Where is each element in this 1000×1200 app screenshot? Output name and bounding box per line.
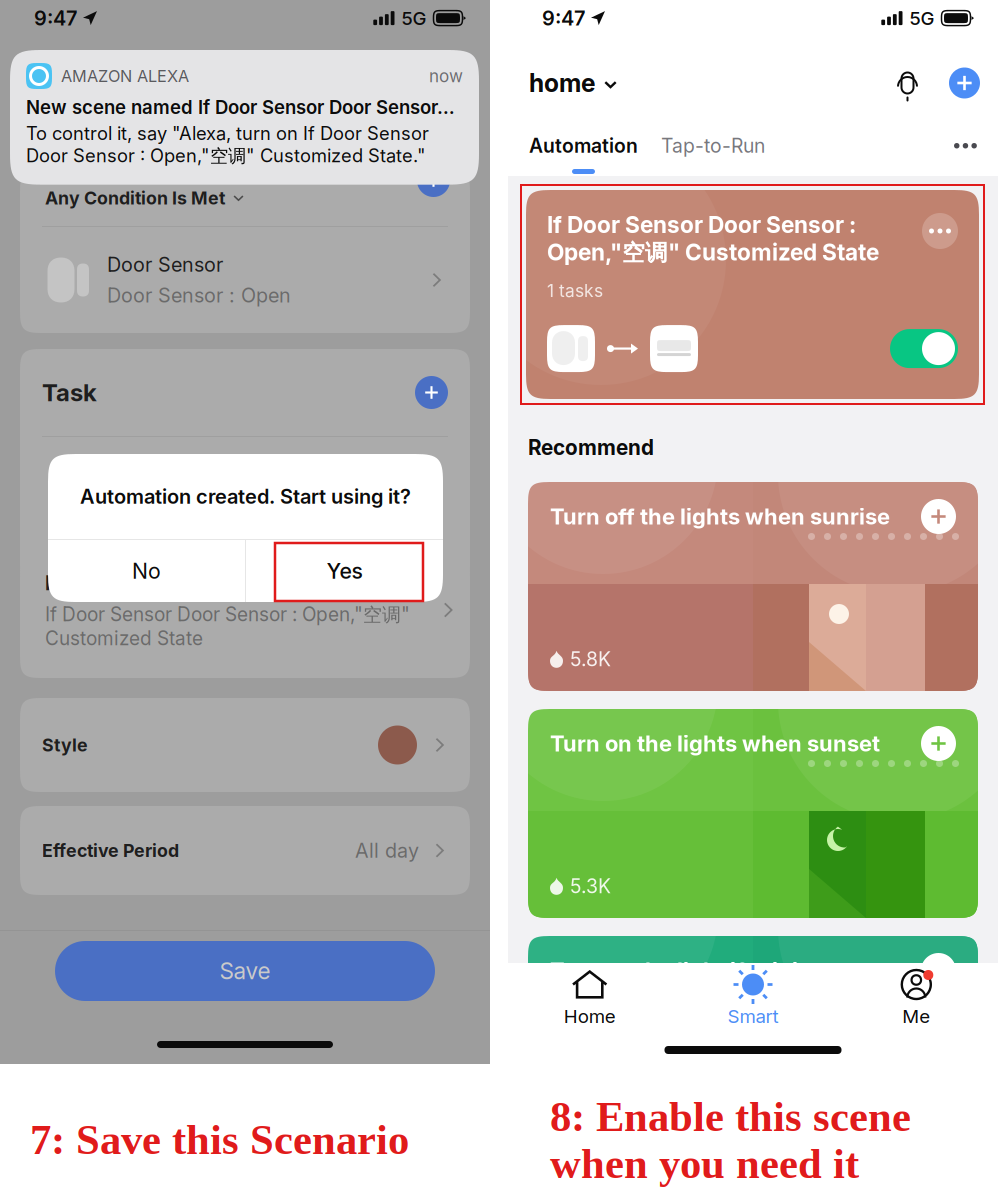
- staticText: Name: [45, 572, 98, 595]
- button[interactable]: Tap-to-Run: [659, 129, 767, 162]
- staticText: when you need it: [550, 1140, 859, 1187]
- staticText: No: [132, 558, 161, 584]
- staticText: 1 tasks: [547, 280, 603, 301]
- staticText: 5G: [909, 7, 934, 29]
- staticText: 9:47: [542, 6, 585, 30]
- button[interactable]: Smart: [671, 970, 835, 1028]
- staticText: home: [529, 68, 595, 98]
- staticText: now: [429, 66, 463, 86]
- staticText: Yes: [326, 558, 362, 584]
- staticText: Home: [564, 1005, 616, 1028]
- staticText: Door Sensor : Open: [107, 283, 291, 307]
- staticText: Any Condition Is Met: [45, 187, 225, 209]
- staticText: If Door Sensor Door Sensor : Open,"空调" C…: [547, 211, 879, 267]
- button[interactable]: Me: [835, 970, 998, 1028]
- button[interactable]: Automation: [527, 129, 640, 162]
- button[interactable]: Yes: [246, 540, 443, 602]
- button[interactable]: More options: [948, 137, 983, 154]
- staticText: 5.8K: [570, 648, 611, 671]
- button[interactable]: Home: [508, 970, 671, 1028]
- staticText: Turn on the light if raining: [550, 957, 826, 984]
- staticText: Turn off the lights when sunrise: [550, 503, 890, 530]
- staticText: Style: [42, 734, 88, 756]
- staticText: AMAZON ALEXA: [61, 66, 189, 86]
- button[interactable]: Save: [55, 941, 435, 1001]
- staticText: To control it, say "Alexa, turn on If Do…: [26, 122, 429, 168]
- button[interactable]: home: [529, 68, 617, 98]
- button[interactable]: Add: [949, 67, 980, 98]
- staticText: Task: [42, 378, 97, 407]
- staticText: Automation created. Start using it?: [80, 484, 411, 509]
- button[interactable]: No: [48, 540, 245, 602]
- staticText: 5.3K: [570, 875, 611, 898]
- staticText: Smart: [727, 1005, 778, 1028]
- staticText: Effective Period: [42, 840, 179, 861]
- staticText: Turn on the lights when sunset: [550, 730, 880, 757]
- staticText: Automation: [529, 134, 638, 157]
- staticText: Save: [219, 957, 270, 985]
- staticText: 4.9K: [570, 1102, 612, 1125]
- staticText: 9:47: [34, 6, 77, 30]
- staticText: Door Sensor: [107, 253, 223, 276]
- staticText: New scene named If Door Sensor Door Sens…: [26, 96, 455, 118]
- staticText: 5G: [401, 7, 426, 29]
- staticText: Me: [902, 1005, 930, 1028]
- staticText: 7: Save this Scenario: [30, 1116, 409, 1163]
- staticText: 8: Enable this scene: [550, 1093, 911, 1140]
- staticText: Tap-to-Run: [661, 134, 765, 157]
- staticText: Recommend: [528, 435, 654, 460]
- button[interactable]: Voice control: [897, 68, 918, 98]
- staticText: All day: [355, 839, 419, 862]
- staticText: If Door Sensor Door Sensor : Open,"空调" C…: [45, 603, 410, 650]
